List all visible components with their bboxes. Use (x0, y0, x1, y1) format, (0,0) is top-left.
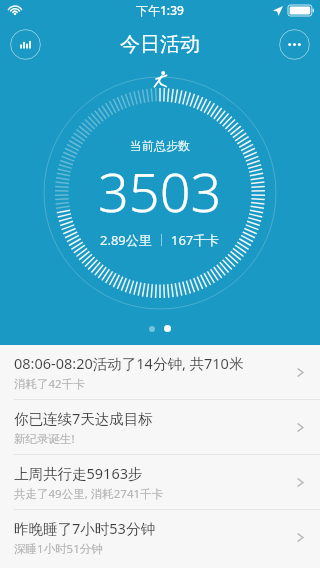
button[interactable]: More options (279, 29, 310, 60)
staticText: 当前总步数 (130, 138, 190, 153)
other: Activity (151, 70, 170, 89)
staticText: 3503 (98, 154, 222, 228)
button[interactable]: 你已连续7天达成目标 (0, 400, 320, 455)
staticText: 消耗了42千卡 (14, 376, 85, 392)
button[interactable]: 08:06-08:20活动了14分钟, 共710米 (0, 345, 320, 400)
button[interactable] (149, 326, 155, 332)
staticText: 2.89公里 (100, 231, 152, 249)
button[interactable] (164, 325, 171, 332)
staticText: 今日活动 (120, 32, 200, 57)
staticText: 你已连续7天达成目标 (14, 408, 153, 428)
staticText: 167千卡 (171, 231, 220, 249)
staticText: 下午1:39 (136, 2, 184, 18)
button[interactable]: 上周共行走59163步 (0, 455, 320, 510)
staticText: 08:06-08:20活动了14分钟, 共710米 (14, 353, 244, 373)
button[interactable]: Statistics (10, 29, 41, 60)
staticText: 新纪录诞生! (14, 431, 75, 447)
staticText: 上周共行走59163步 (14, 463, 143, 483)
staticText: 共走了49公里, 消耗2741千卡 (14, 486, 164, 502)
staticText: 深睡1小时51分钟 (14, 541, 103, 557)
button[interactable]: 昨晚睡了7小时53分钟 (0, 510, 320, 565)
staticText: 昨晚睡了7小时53分钟 (14, 518, 155, 538)
